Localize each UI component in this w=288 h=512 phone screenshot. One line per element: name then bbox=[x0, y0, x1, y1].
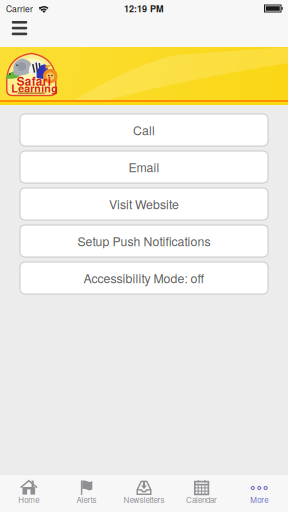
button[interactable]: Accessibility Mode: off bbox=[20, 262, 268, 294]
button[interactable]: Newsletters bbox=[115, 474, 173, 512]
button[interactable]: More bbox=[230, 474, 288, 512]
staticText: Home bbox=[18, 494, 39, 505]
button[interactable]: Calendar bbox=[173, 474, 230, 512]
staticText: More bbox=[250, 494, 268, 505]
button[interactable]: Home bbox=[0, 474, 58, 512]
button[interactable]: Setup Push Notifications bbox=[20, 225, 268, 257]
staticText: Safari bbox=[17, 72, 51, 89]
staticText: Carrier bbox=[6, 2, 33, 15]
staticText: Alerts bbox=[76, 494, 96, 505]
staticText: Setup Push Notifications bbox=[77, 232, 210, 250]
staticText: Visit Website bbox=[109, 195, 179, 213]
staticText: 12:19 PM bbox=[124, 2, 164, 15]
staticText: Accessibility Mode: off bbox=[83, 269, 204, 287]
button[interactable]: Call bbox=[20, 114, 268, 146]
button[interactable]: Alerts bbox=[58, 474, 115, 512]
staticText: Calendar bbox=[186, 494, 217, 505]
button[interactable]: Visit Website bbox=[20, 188, 268, 220]
button[interactable]: Menu bbox=[0, 17, 39, 47]
staticText: Call bbox=[133, 121, 155, 139]
staticText: Learning bbox=[11, 80, 58, 96]
button[interactable]: Email bbox=[20, 151, 268, 183]
staticText: Email bbox=[128, 158, 159, 176]
staticText: Newsletters bbox=[123, 494, 164, 505]
